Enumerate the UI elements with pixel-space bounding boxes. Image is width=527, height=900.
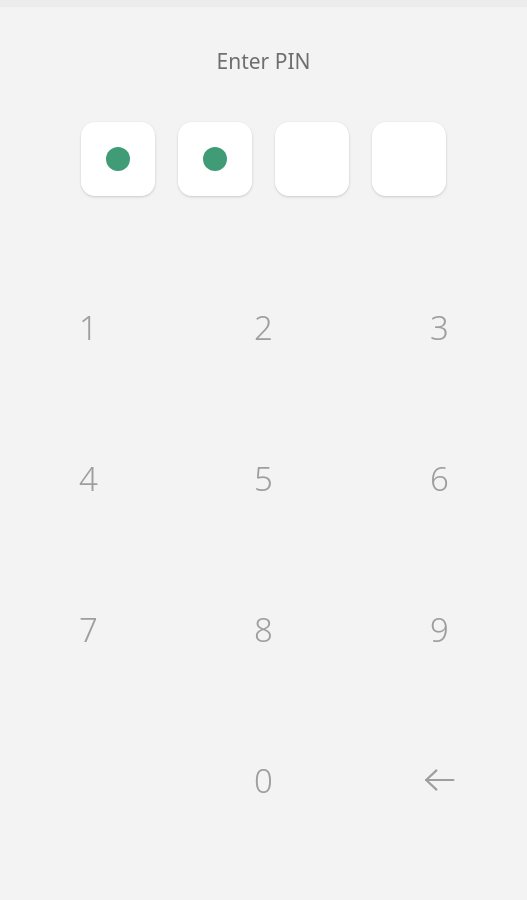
button[interactable]: 0 <box>215 732 311 828</box>
button[interactable]: 1 <box>40 279 136 375</box>
button[interactable]: PIN digit entered <box>178 122 252 196</box>
button[interactable]: PIN digit empty <box>372 122 446 196</box>
staticText: 7 <box>79 607 98 652</box>
staticText: 6 <box>430 456 449 501</box>
button[interactable]: PIN digit empty <box>275 122 349 196</box>
staticText: Enter PIN <box>0 47 527 76</box>
button[interactable]: 6 <box>391 430 487 526</box>
staticText: 5 <box>254 456 273 501</box>
button[interactable]: 8 <box>215 581 311 677</box>
staticText: 1 <box>79 305 98 350</box>
button[interactable]: 5 <box>215 430 311 526</box>
staticText: 0 <box>254 758 273 803</box>
button[interactable]: 2 <box>215 279 311 375</box>
staticText: 2 <box>254 305 273 350</box>
button[interactable]: 4 <box>40 430 136 526</box>
button[interactable]: 3 <box>391 279 487 375</box>
staticText: 8 <box>254 607 273 652</box>
button[interactable]: PIN digit entered <box>81 122 155 196</box>
staticText: 9 <box>430 607 449 652</box>
button[interactable]: 7 <box>40 581 136 677</box>
staticText: 4 <box>79 456 98 501</box>
button[interactable]: 9 <box>391 581 487 677</box>
staticText: 3 <box>430 305 449 350</box>
button[interactable]: Backspace <box>391 732 487 828</box>
